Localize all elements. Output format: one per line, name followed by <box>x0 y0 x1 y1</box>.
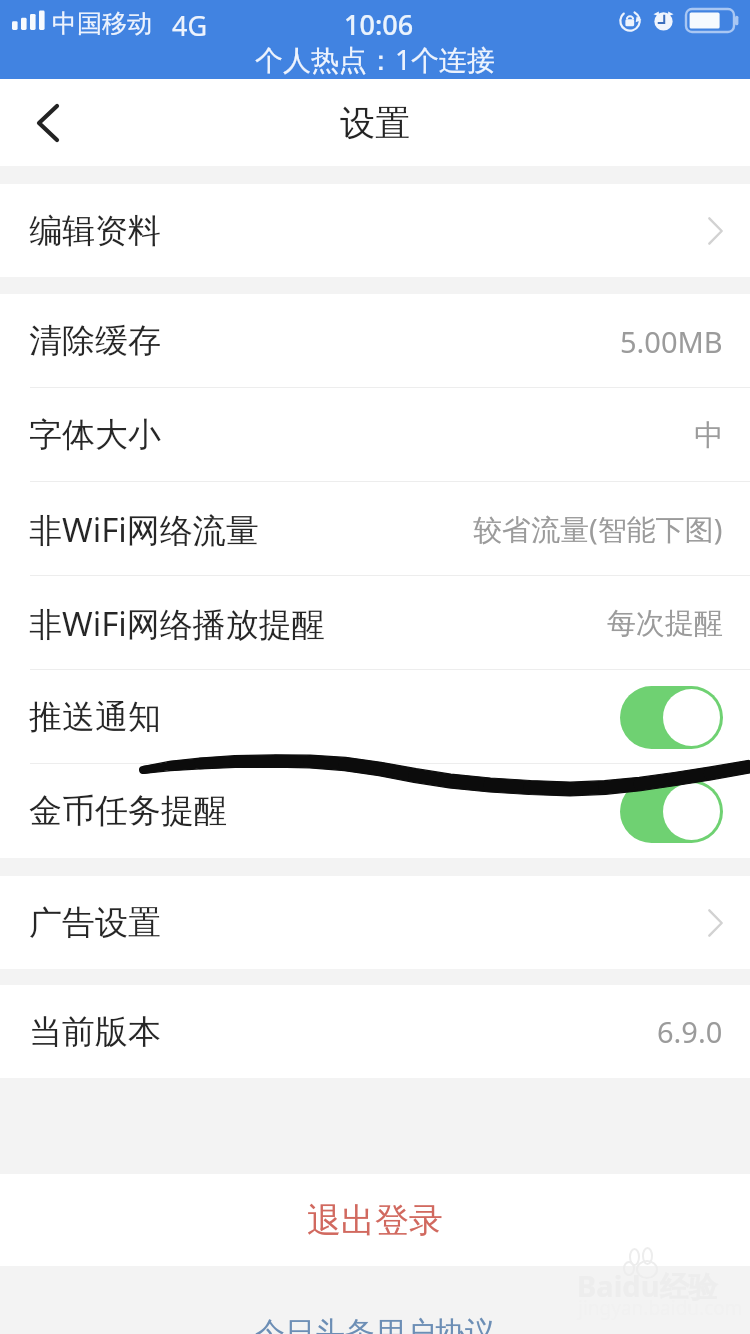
button[interactable]: Toggle on <box>620 780 723 843</box>
staticText: 当前版本 <box>29 1011 161 1053</box>
button[interactable]: 编辑资料 <box>0 184 750 277</box>
staticText: 非WiFi网络播放提醒 <box>29 601 325 646</box>
staticText: 退出登录 <box>307 1199 443 1242</box>
staticText: 字体大小 <box>29 414 161 456</box>
button[interactable]: 字体大小 <box>0 388 750 482</box>
staticText: 4G <box>172 7 208 44</box>
button[interactable]: 清除缓存 <box>0 294 750 388</box>
staticText: 10:06 <box>344 6 414 43</box>
staticText: 个人热点：1个连接 <box>255 40 496 78</box>
staticText: 中 <box>694 417 723 454</box>
staticText: 非WiFi网络流量 <box>29 507 259 552</box>
staticText: 清除缓存 <box>29 320 161 362</box>
button[interactable]: 非WiFi网络流量 <box>0 482 750 576</box>
staticText: 编辑资料 <box>29 210 161 252</box>
staticText: 金币任务提醒 <box>29 790 227 832</box>
button[interactable]: 推送通知 <box>0 670 750 764</box>
button[interactable]: Back <box>3 79 93 166</box>
staticText: 今日头条用户协议 <box>255 1314 495 1334</box>
button[interactable]: 金币任务提醒 <box>0 764 750 858</box>
button[interactable]: Toggle on <box>620 686 723 749</box>
staticText: 广告设置 <box>29 902 161 944</box>
button[interactable]: 当前版本 <box>0 985 750 1078</box>
staticText: 中国移动 <box>52 8 152 39</box>
staticText: 较省流量(智能下图) <box>473 509 723 549</box>
staticText: 5.00MB <box>620 322 723 361</box>
button[interactable]: 退出登录 <box>0 1174 750 1266</box>
staticText: 6.9.0 <box>657 1012 723 1051</box>
staticText: 推送通知 <box>29 696 161 738</box>
button[interactable]: 广告设置 <box>0 876 750 969</box>
staticText: 设置 <box>340 101 410 145</box>
button[interactable]: 非WiFi网络播放提醒 <box>0 576 750 670</box>
button[interactable]: 今日头条用户协议 <box>0 1314 750 1334</box>
staticText: 每次提醒 <box>607 605 723 642</box>
